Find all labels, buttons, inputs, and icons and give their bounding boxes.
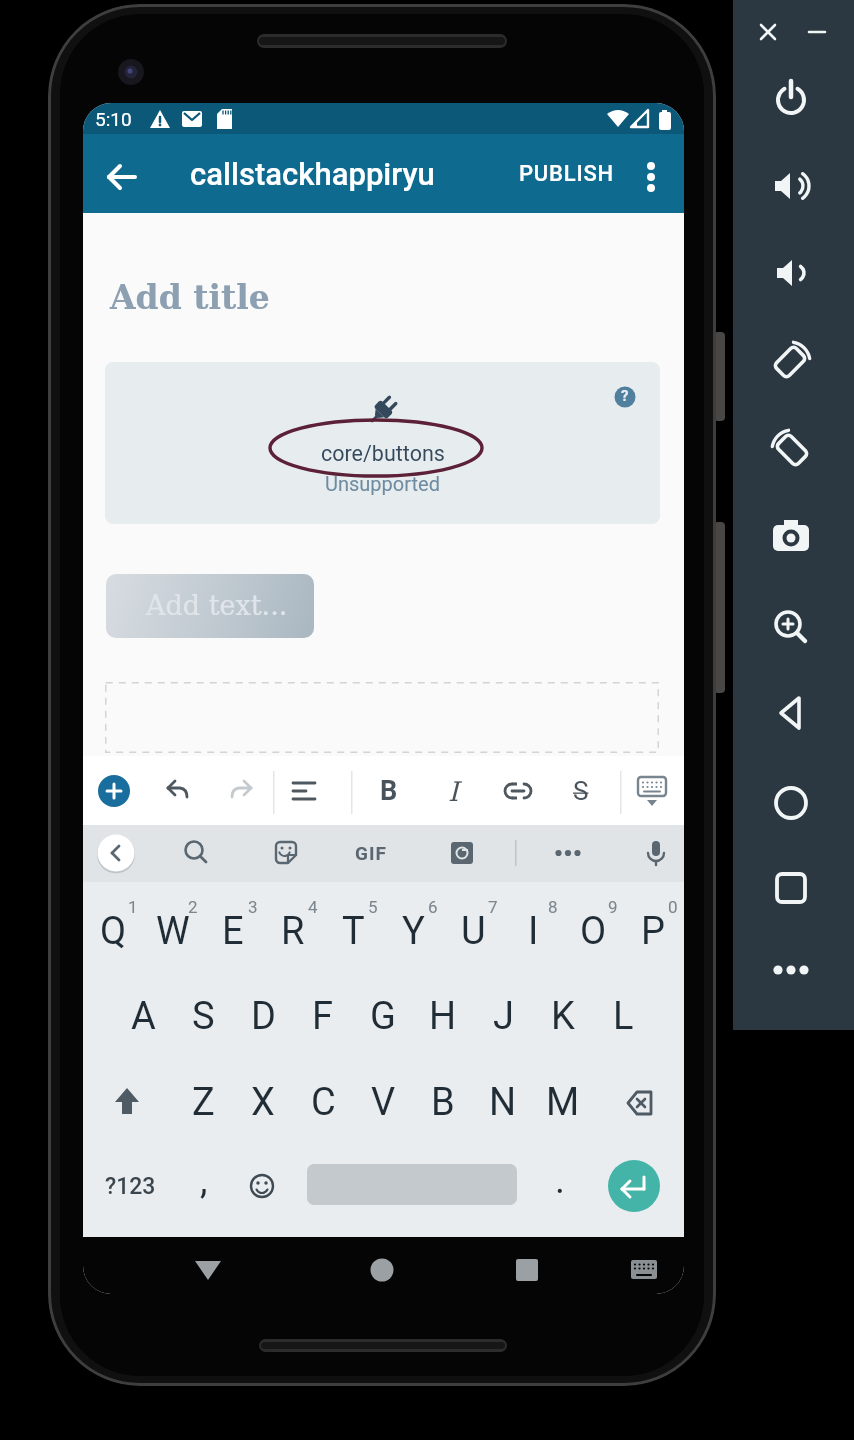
- button[interactable]: B: [369, 769, 409, 813]
- button[interactable]: F: [293, 986, 353, 1046]
- staticText: ?: [621, 387, 629, 405]
- staticText: 5:10: [95, 108, 132, 130]
- button[interactable]: [766, 688, 816, 738]
- button[interactable]: PUBLISH: [476, 134, 656, 213]
- button[interactable]: [764, 334, 818, 388]
- staticText: V: [371, 1080, 396, 1125]
- staticText: G: [370, 994, 396, 1039]
- button[interactable]: [766, 945, 816, 995]
- button[interactable]: I: [503, 901, 563, 961]
- staticText: Q: [100, 909, 127, 954]
- button[interactable]: [746, 10, 790, 54]
- staticText: J: [493, 994, 514, 1039]
- button[interactable]: Y: [383, 901, 443, 961]
- button[interactable]: [795, 10, 839, 54]
- button[interactable]: [636, 833, 676, 873]
- button[interactable]: [766, 73, 816, 123]
- button[interactable]: I: [433, 769, 473, 813]
- button[interactable]: X: [233, 1072, 293, 1132]
- button[interactable]: O: [563, 901, 623, 961]
- staticText: 1: [128, 897, 138, 917]
- button[interactable]: W: [143, 901, 203, 961]
- button[interactable]: [105, 362, 660, 524]
- button[interactable]: .: [545, 1155, 575, 1205]
- staticText: 2: [188, 897, 198, 917]
- button[interactable]: [764, 422, 818, 476]
- button[interactable]: [610, 1078, 660, 1128]
- button[interactable]: [766, 778, 816, 828]
- button[interactable]: [96, 833, 136, 873]
- button[interactable]: [102, 1077, 152, 1127]
- button[interactable]: [221, 771, 261, 811]
- button[interactable]: [106, 574, 314, 638]
- staticText: U: [461, 909, 486, 954]
- staticText: M: [546, 1080, 580, 1125]
- button[interactable]: K: [533, 986, 593, 1046]
- staticText: R: [281, 909, 305, 954]
- button[interactable]: E: [203, 901, 263, 961]
- button[interactable]: V: [353, 1072, 413, 1132]
- button[interactable]: Q: [83, 901, 143, 961]
- button[interactable]: [158, 771, 198, 811]
- button[interactable]: [766, 248, 816, 298]
- button[interactable]: M: [533, 1072, 593, 1132]
- staticText: 7: [488, 897, 498, 917]
- button[interactable]: L: [593, 986, 653, 1046]
- button[interactable]: B: [413, 1072, 473, 1132]
- button[interactable]: S: [173, 986, 233, 1046]
- button[interactable]: [631, 155, 671, 199]
- button[interactable]: [360, 1248, 404, 1292]
- button[interactable]: D: [233, 986, 293, 1046]
- button[interactable]: U: [443, 901, 503, 961]
- button[interactable]: [548, 833, 588, 873]
- staticText: B: [380, 775, 398, 807]
- button[interactable]: [284, 771, 324, 811]
- button[interactable]: [766, 863, 816, 913]
- button[interactable]: [766, 161, 816, 211]
- button[interactable]: [498, 771, 538, 811]
- button[interactable]: N: [473, 1072, 533, 1132]
- staticText: ,: [200, 1158, 208, 1203]
- staticText: P: [641, 909, 665, 954]
- staticText: core/buttons: [321, 441, 445, 466]
- button[interactable]: [505, 1248, 549, 1292]
- staticText: X: [251, 1080, 275, 1125]
- button[interactable]: [96, 773, 132, 809]
- button[interactable]: A: [113, 986, 173, 1046]
- button[interactable]: [266, 833, 306, 873]
- button[interactable]: [442, 833, 482, 873]
- button[interactable]: [766, 511, 816, 561]
- button[interactable]: [177, 833, 217, 873]
- staticText: GIF: [355, 842, 387, 864]
- button[interactable]: [613, 385, 637, 409]
- staticText: ?123: [105, 1173, 156, 1200]
- staticText: 5: [368, 897, 378, 917]
- staticText: .: [555, 1158, 566, 1203]
- button[interactable]: G: [353, 986, 413, 1046]
- button[interactable]: H: [413, 986, 473, 1046]
- staticText: Z: [192, 1080, 215, 1125]
- button[interactable]: [632, 769, 672, 813]
- staticText: O: [580, 909, 607, 954]
- staticText: I: [528, 909, 539, 954]
- staticText: 9: [608, 897, 618, 917]
- button[interactable]: [100, 155, 144, 199]
- button[interactable]: P: [623, 901, 683, 961]
- button[interactable]: [237, 1161, 287, 1211]
- button[interactable]: ,: [189, 1155, 219, 1205]
- staticText: A: [131, 994, 156, 1039]
- button[interactable]: J: [473, 986, 533, 1046]
- button[interactable]: Z: [173, 1072, 233, 1132]
- button[interactable]: ?123: [95, 1161, 165, 1211]
- button[interactable]: T: [323, 901, 383, 961]
- button[interactable]: [607, 1159, 661, 1213]
- button[interactable]: R: [263, 901, 323, 961]
- staticText: callstackhappiryu: [190, 156, 435, 192]
- button[interactable]: [186, 1248, 230, 1292]
- button[interactable]: [766, 602, 816, 652]
- button[interactable]: [626, 1254, 662, 1286]
- button[interactable]: S: [561, 769, 601, 813]
- button[interactable]: C: [293, 1072, 353, 1132]
- button[interactable]: GIF: [346, 833, 396, 873]
